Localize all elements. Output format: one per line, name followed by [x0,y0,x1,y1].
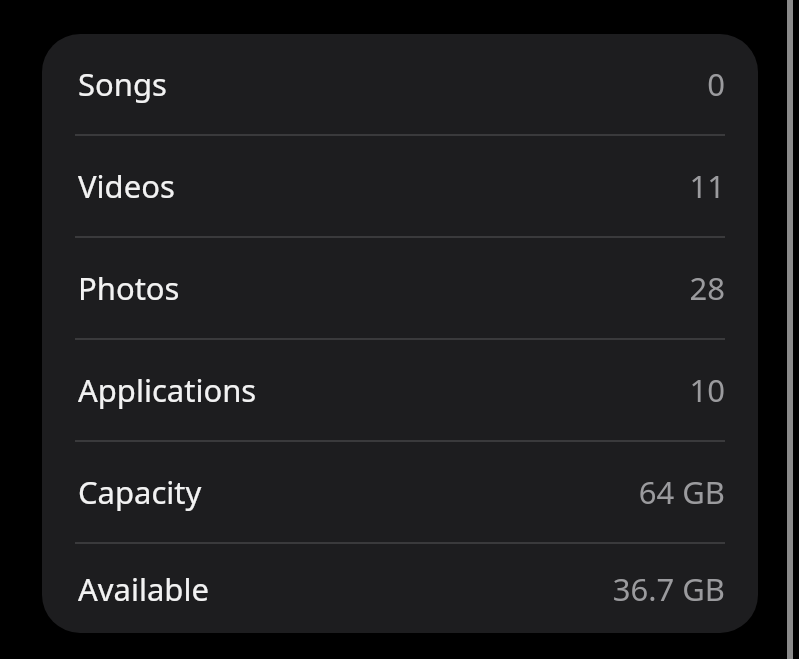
staticText: 64 GB [638,471,725,513]
button[interactable]: Songs [42,34,758,134]
staticText: 0 [707,63,725,105]
staticText: Applications [78,369,257,411]
button[interactable]: Capacity [42,442,758,542]
staticText: 28 [689,267,725,309]
staticText: Photos [78,267,180,309]
button[interactable]: Photos [42,238,758,338]
staticText: Capacity [78,471,202,513]
button[interactable]: Applications [42,340,758,440]
staticText: 11 [689,165,725,207]
staticText: Videos [78,165,175,207]
button[interactable]: Available [42,544,758,633]
staticText: 36.7 GB [612,568,725,610]
staticText: Songs [78,63,167,105]
staticText: Available [78,568,209,610]
button[interactable]: Videos [42,136,758,236]
staticText: 10 [689,369,725,411]
